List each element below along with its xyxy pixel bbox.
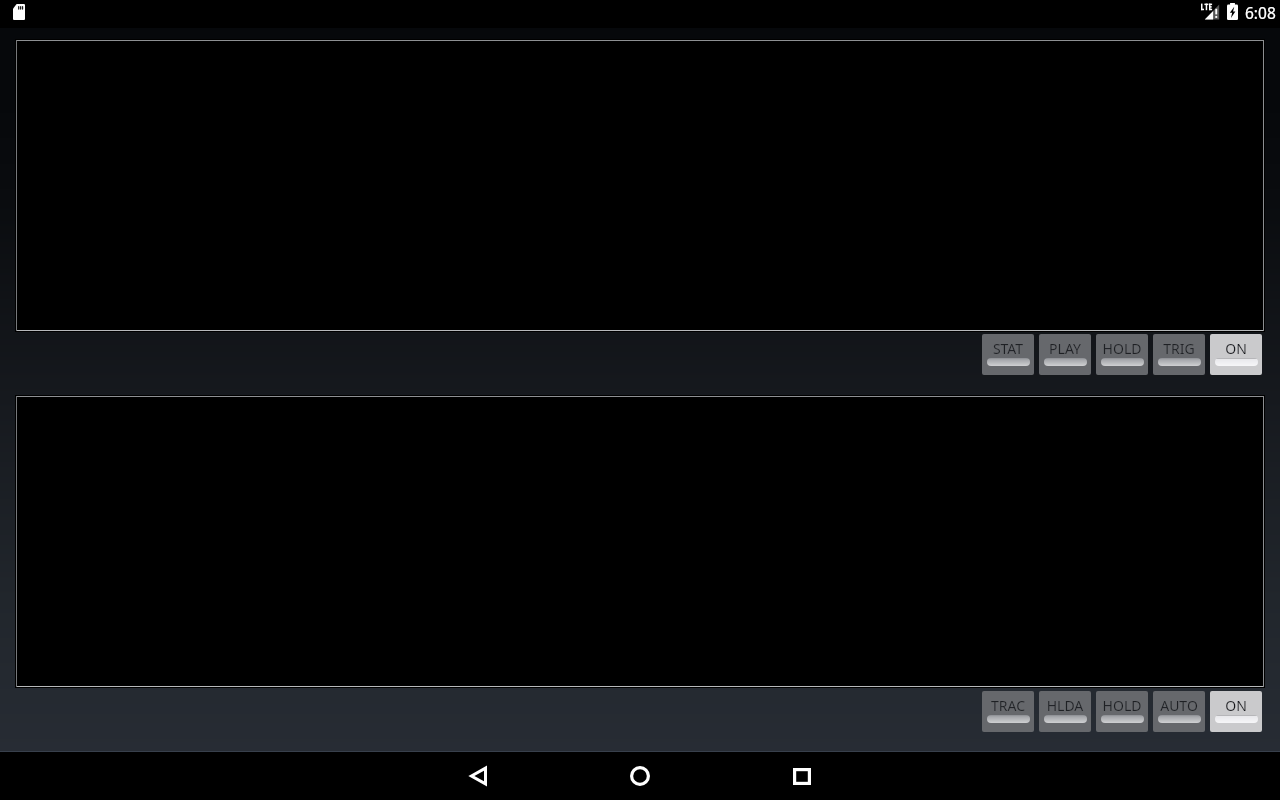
button[interactable]: STAT [982,334,1034,375]
staticText: TRAC [982,696,1034,715]
staticText: ON [1210,696,1262,715]
button[interactable]: Home [616,752,664,800]
button[interactable]: Recents [778,752,826,800]
staticText: AUTO [1153,696,1205,715]
staticText: ON [1210,339,1262,358]
button[interactable]: HOLD [1096,691,1148,732]
button[interactable]: ON [1210,691,1262,732]
staticText: TRIG [1153,339,1205,358]
button[interactable]: HOLD [1096,334,1148,375]
button[interactable]: AUTO [1153,691,1205,732]
button[interactable]: ON [1210,334,1262,375]
button[interactable]: TRAC [982,691,1034,732]
button[interactable]: Back [454,752,502,800]
staticText: HOLD [1096,339,1148,358]
staticText: HLDA [1039,696,1091,715]
staticText: STAT [982,339,1034,358]
button[interactable]: TRIG [1153,334,1205,375]
button[interactable]: PLAY [1039,334,1091,375]
button[interactable]: HLDA [1039,691,1091,732]
staticText: 6:08 [1245,2,1276,23]
staticText: PLAY [1039,339,1091,358]
staticText: HOLD [1096,696,1148,715]
